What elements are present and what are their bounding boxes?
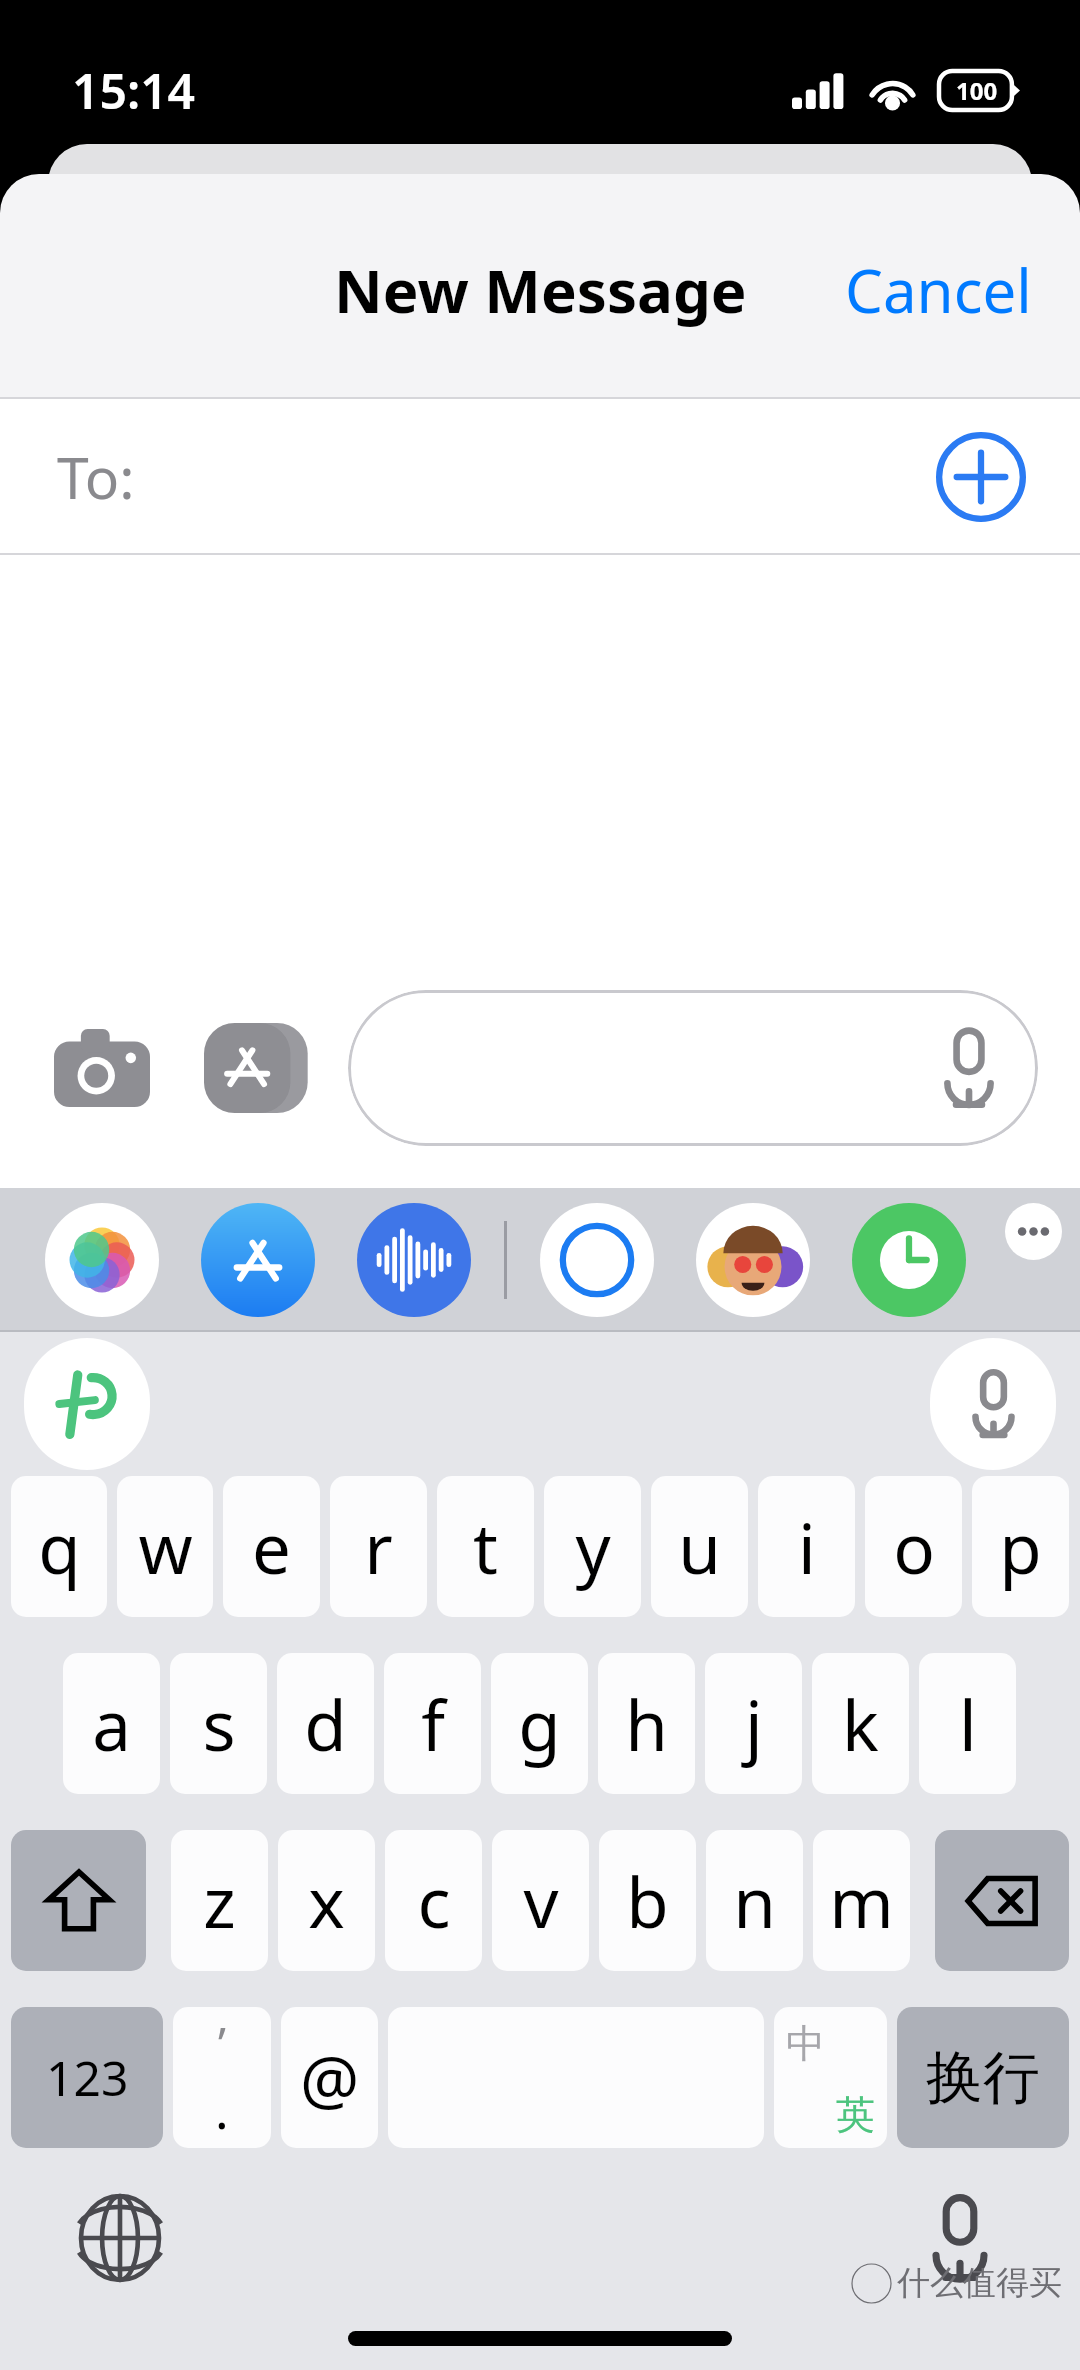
staticText: h [625, 1677, 668, 1771]
button[interactable]: Switch language [774, 2007, 887, 2148]
button[interactable]: y [544, 1476, 641, 1617]
button[interactable]: e [223, 1476, 320, 1617]
button[interactable]: More [1005, 1200, 1062, 1320]
button[interactable] [348, 990, 1038, 1146]
button[interactable]: d [277, 1653, 374, 1794]
button[interactable]: Cancel [797, 225, 1080, 355]
button[interactable]: x [278, 1830, 375, 1971]
button[interactable]: v [492, 1830, 589, 1971]
button[interactable]: Backspace [935, 1830, 1069, 1971]
button[interactable]: o [865, 1476, 962, 1617]
staticText: r [364, 1500, 393, 1594]
staticText: a [92, 1677, 131, 1771]
button[interactable]: f [384, 1653, 481, 1794]
button[interactable]: Camera [30, 996, 174, 1140]
button[interactable]: Change keyboard [54, 2172, 186, 2304]
staticText: @ [300, 2033, 360, 2123]
button[interactable]: m [813, 1830, 910, 1971]
staticText: q [38, 1500, 81, 1594]
staticText: s [202, 1677, 236, 1771]
staticText: 中 [786, 2019, 825, 2068]
staticText: e [252, 1500, 291, 1594]
button[interactable]: s [170, 1653, 267, 1794]
button[interactable]: Shift [11, 1830, 146, 1971]
button[interactable]: g [491, 1653, 588, 1794]
staticText: p [999, 1500, 1042, 1594]
staticText: 什么值得买 [897, 2262, 1062, 2304]
button[interactable]: i [758, 1476, 855, 1617]
staticText: i [798, 1500, 816, 1594]
button[interactable]: ’ [173, 2007, 271, 2148]
button[interactable]: t [437, 1476, 534, 1617]
button[interactable]: Photos [42, 1200, 162, 1320]
staticText: x [308, 1854, 345, 1948]
button[interactable]: h [598, 1653, 695, 1794]
staticText: u [678, 1500, 721, 1594]
button[interactable]: Audio [354, 1200, 474, 1320]
staticText: c [417, 1854, 451, 1948]
button[interactable]: q [11, 1476, 107, 1617]
button[interactable]: u [651, 1476, 748, 1617]
staticText: f [421, 1677, 445, 1771]
button[interactable]: a [63, 1653, 160, 1794]
staticText: d [304, 1677, 347, 1771]
button[interactable]: Memoji [693, 1200, 813, 1320]
button[interactable]: w [117, 1476, 213, 1617]
staticText: 换行 [926, 2042, 1040, 2114]
button[interactable]: Activity [849, 1200, 969, 1320]
staticText: 100 [956, 74, 998, 107]
button[interactable]: 123 [11, 2007, 163, 2148]
button[interactable]: Dictation [894, 2172, 1026, 2304]
staticText: w [138, 1500, 193, 1594]
button[interactable]: App Store [198, 1200, 318, 1320]
button[interactable]: Dictate [930, 1338, 1056, 1470]
button[interactable]: n [706, 1830, 803, 1971]
button[interactable]: c [385, 1830, 482, 1971]
button[interactable]: iFLY [537, 1200, 657, 1320]
button[interactable]: p [972, 1476, 1069, 1617]
staticText: 英 [836, 2090, 875, 2139]
staticText: . [215, 2074, 229, 2143]
button[interactable]: Paste [24, 1338, 150, 1470]
staticText: To: [57, 438, 135, 516]
button[interactable]: b [599, 1830, 696, 1971]
staticText: g [518, 1677, 561, 1771]
button[interactable]: l [919, 1653, 1016, 1794]
button[interactable]: 换行 [897, 2007, 1069, 2148]
button[interactable]: r [330, 1476, 427, 1617]
staticText: k [842, 1677, 879, 1771]
staticText: n [733, 1854, 776, 1948]
staticText: 123 [46, 2045, 129, 2110]
button[interactable]: To: [0, 399, 1080, 555]
staticText: 15:14 [72, 58, 196, 123]
staticText: b [626, 1854, 669, 1948]
button[interactable]: Apps [186, 996, 330, 1140]
button[interactable]: k [812, 1653, 909, 1794]
staticText: y [575, 1500, 611, 1594]
button[interactable]: j [705, 1653, 802, 1794]
staticText: ’ [218, 2013, 226, 2074]
staticText: o [893, 1500, 935, 1594]
staticText: Cancel [845, 249, 1032, 331]
button[interactable]: @ [281, 2007, 378, 2148]
button[interactable]: Add contact [930, 426, 1032, 528]
staticText: t [473, 1500, 498, 1594]
button[interactable]: z [171, 1830, 268, 1971]
staticText: j [745, 1677, 763, 1771]
staticText: v [523, 1854, 559, 1948]
staticText: l [959, 1677, 977, 1771]
staticText: m [829, 1854, 894, 1948]
staticText: z [203, 1854, 236, 1948]
staticText: New Message [334, 249, 747, 331]
